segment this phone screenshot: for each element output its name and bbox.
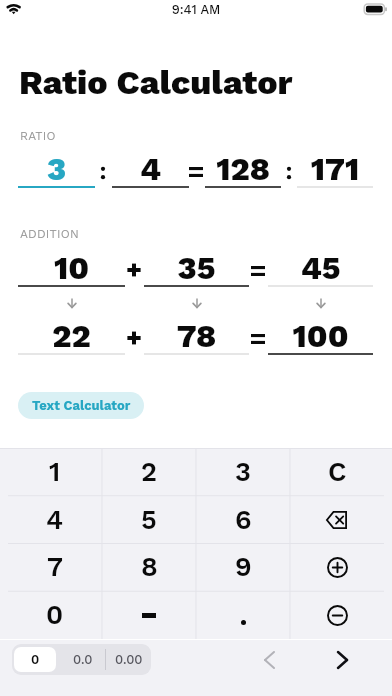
button[interactable]: 2 <box>102 448 196 496</box>
button[interactable]: 0 <box>8 591 102 639</box>
staticText: 35 <box>144 249 249 287</box>
staticText: 128 <box>205 150 281 188</box>
button[interactable] <box>196 591 290 639</box>
staticText: 4 <box>46 504 64 536</box>
staticText: 1 <box>49 456 61 488</box>
staticText: 0.00 <box>115 652 143 667</box>
staticText: ADDITION <box>20 227 79 241</box>
button[interactable]: Subtract <box>290 591 384 639</box>
button[interactable]: 5 <box>102 496 196 544</box>
staticText: 45 <box>268 249 373 287</box>
button[interactable]: 0 <box>14 647 56 672</box>
button[interactable]: 8 <box>102 543 196 591</box>
button[interactable]: 1 <box>8 448 102 496</box>
button[interactable]: C <box>290 448 384 496</box>
staticText: 4 <box>112 150 189 188</box>
staticText: 171 <box>297 150 373 188</box>
button[interactable]: 0.00 <box>109 647 149 672</box>
button[interactable]: Previous <box>251 644 287 675</box>
staticText: 9 <box>235 551 252 583</box>
staticText: 0 <box>31 652 40 667</box>
staticText: 78 <box>144 317 249 355</box>
button[interactable]: 0.0 <box>60 647 105 672</box>
staticText: 22 <box>18 317 125 355</box>
staticText: 0 <box>46 599 64 631</box>
staticText: 2 <box>141 456 157 488</box>
staticText: 3 <box>18 150 95 188</box>
staticText: Text Calculator <box>32 398 131 413</box>
staticText: Ratio Calculator <box>19 62 293 102</box>
staticText: 3 <box>235 456 251 488</box>
button[interactable]: 6 <box>196 496 290 544</box>
staticText: 10 <box>18 249 125 287</box>
button[interactable]: Add <box>290 543 384 591</box>
button[interactable]: Backspace <box>290 496 384 544</box>
staticText: C <box>328 456 347 488</box>
button[interactable]: 9 <box>196 543 290 591</box>
staticText: 5 <box>141 504 157 536</box>
staticText: 9:41 AM <box>146 2 246 17</box>
button[interactable]: Text Calculator <box>18 392 144 419</box>
staticText: 6 <box>235 504 252 536</box>
staticText: 0.0 <box>73 652 93 667</box>
staticText: RATIO <box>20 129 56 143</box>
button[interactable]: 7 <box>8 543 102 591</box>
button[interactable]: 3 <box>196 448 290 496</box>
button[interactable] <box>102 591 196 639</box>
staticText: 7 <box>47 551 63 583</box>
button[interactable]: Next <box>324 644 360 675</box>
staticText: 8 <box>141 551 158 583</box>
staticText: 100 <box>268 317 373 355</box>
button[interactable]: 4 <box>8 496 102 544</box>
